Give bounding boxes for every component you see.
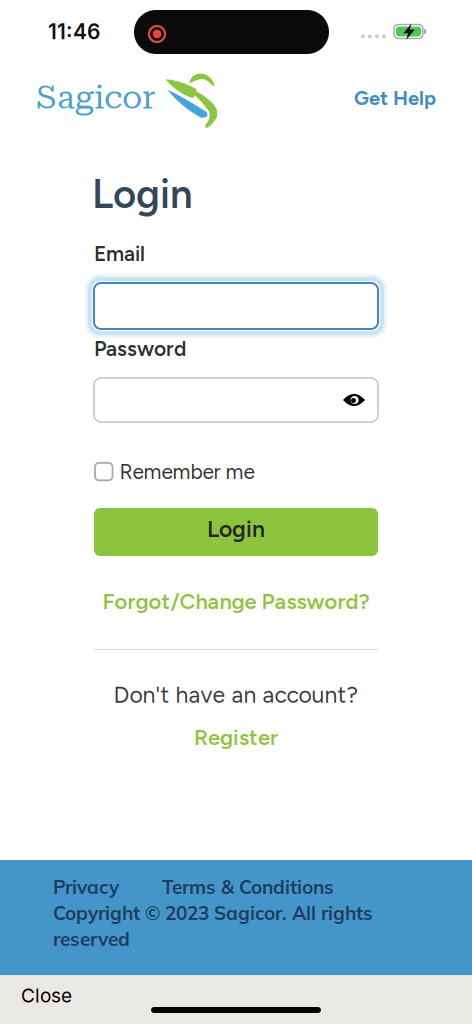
button[interactable]: Forgot/Change Password? <box>102 588 369 614</box>
staticText: Copyright © 2023 Sagicor. All rights <box>53 901 373 925</box>
button[interactable]: Login <box>94 508 378 556</box>
button[interactable]: Password <box>94 378 378 422</box>
staticText: Close <box>21 984 72 1007</box>
button[interactable]: Email <box>94 283 378 329</box>
staticText: reserved <box>53 927 130 951</box>
staticText: Remember me <box>119 459 254 484</box>
button[interactable]: Privacy <box>53 875 119 899</box>
button[interactable]: Register <box>194 724 278 750</box>
staticText: Password <box>94 336 186 361</box>
staticText: Email <box>94 241 145 266</box>
staticText: 11:46 <box>48 19 100 44</box>
staticText: Register <box>194 724 278 750</box>
staticText: Terms & Conditions <box>162 875 334 899</box>
staticText: Sagicor <box>36 78 156 117</box>
staticText: Login <box>92 170 193 218</box>
button[interactable]: Close <box>21 984 72 1007</box>
staticText: Get Help <box>354 86 436 110</box>
staticText: Forgot/Change Password? <box>102 588 369 614</box>
button[interactable]: Show password <box>341 391 367 409</box>
button[interactable]: Terms & Conditions <box>162 875 334 899</box>
staticText: Don't have an account? <box>113 681 358 709</box>
staticText: Login <box>207 515 265 543</box>
staticText: Privacy <box>53 875 119 899</box>
button[interactable]: Remember me <box>95 459 254 484</box>
button[interactable]: Get Help <box>354 86 436 110</box>
